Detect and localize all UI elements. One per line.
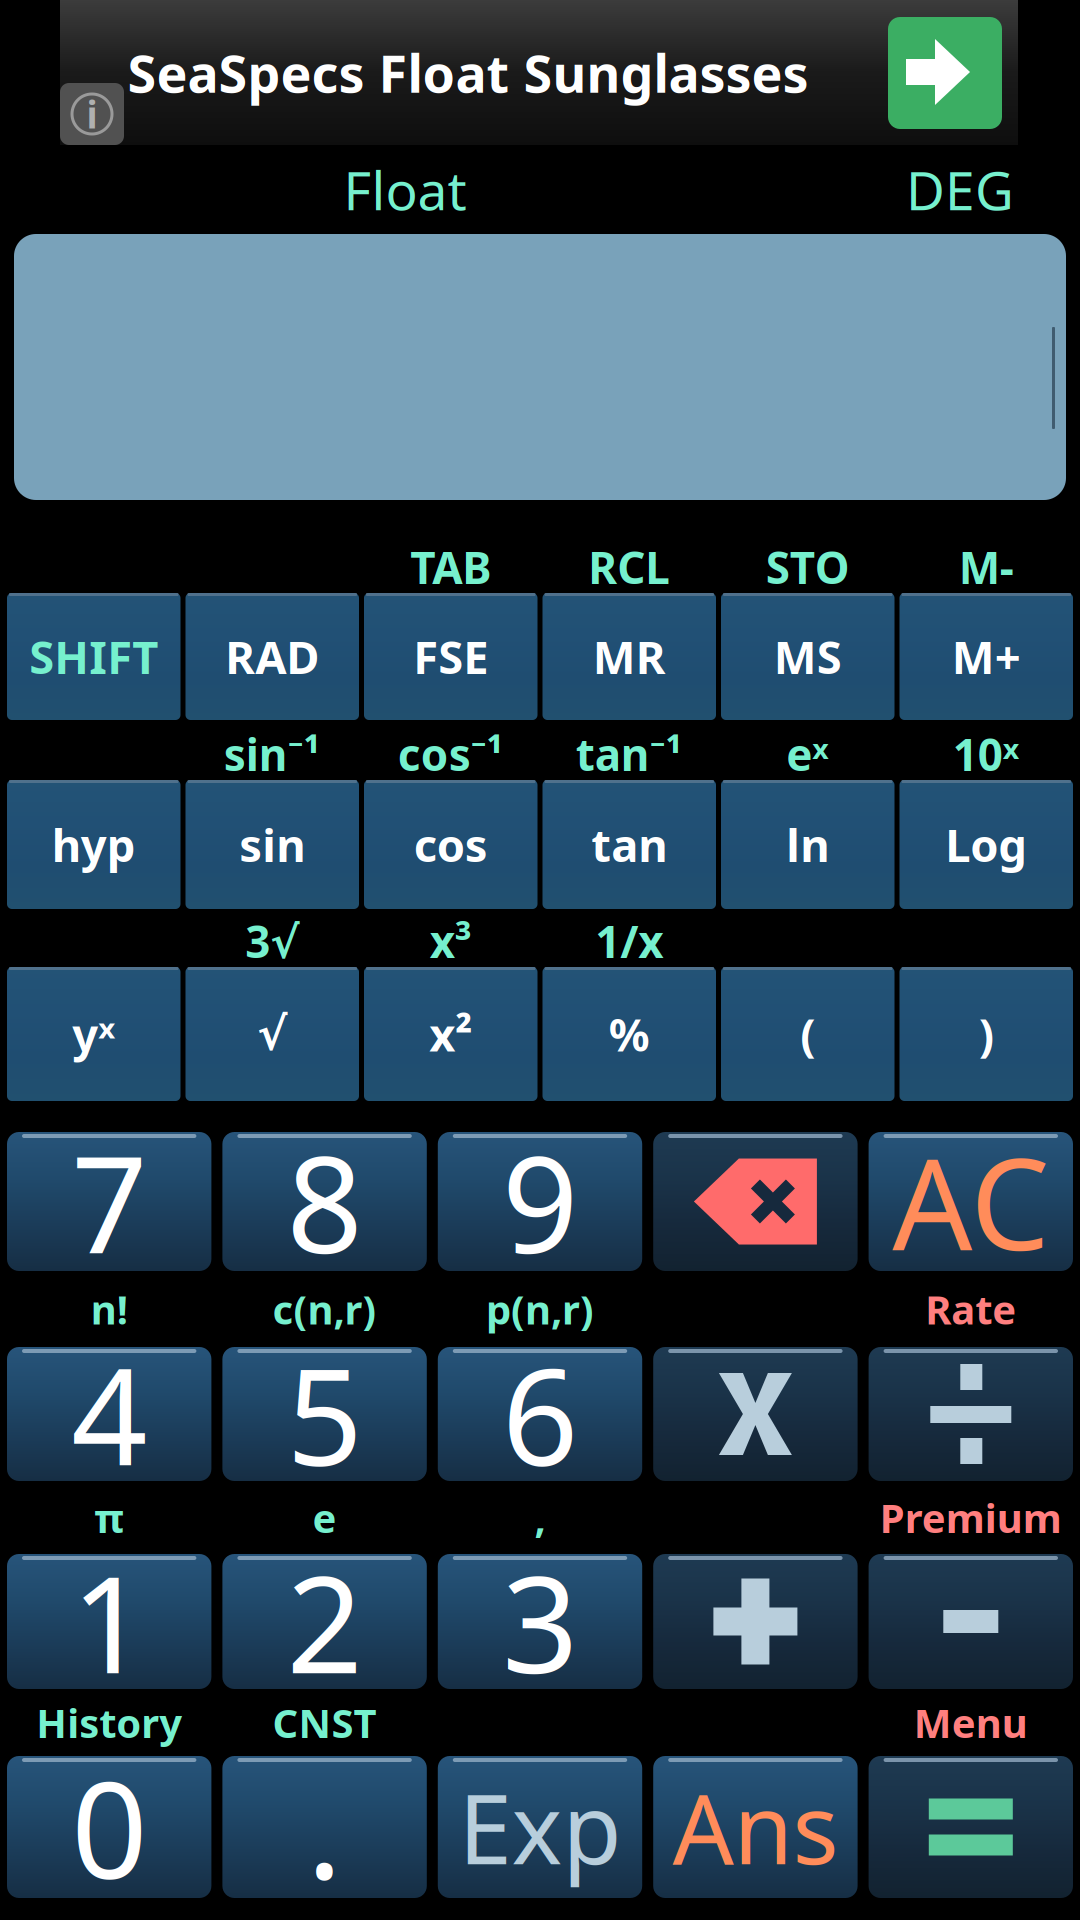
button[interactable]: % xyxy=(542,967,716,1101)
staticText: ln xyxy=(786,814,829,875)
staticText: 6 xyxy=(502,1325,578,1503)
staticText: CNST xyxy=(273,1696,377,1749)
staticText: 5 xyxy=(287,1325,363,1503)
staticText: M+ xyxy=(952,626,1021,687)
button[interactable]: 7 xyxy=(7,1132,211,1271)
staticText: hyp xyxy=(52,814,136,875)
staticText: 9 xyxy=(502,1113,578,1290)
staticText: 4 xyxy=(71,1325,147,1503)
staticText: DEG xyxy=(906,154,1014,225)
staticText: e xyxy=(313,1491,337,1544)
button[interactable]: x² xyxy=(364,967,537,1101)
staticText: Ans xyxy=(672,1763,838,1891)
button[interactable]: tan xyxy=(542,780,716,909)
staticText: 8 xyxy=(287,1113,363,1290)
button[interactable]: cos xyxy=(364,780,537,909)
staticText: cos⁻¹ xyxy=(398,725,504,783)
staticText: 2 xyxy=(287,1533,363,1710)
button[interactable]: . xyxy=(222,1756,427,1898)
button[interactable]: SHIFT xyxy=(7,593,180,720)
staticText: i xyxy=(86,89,97,139)
button[interactable]: 2 xyxy=(222,1554,427,1689)
staticText: MR xyxy=(593,626,666,687)
staticText: 10ˣ xyxy=(953,725,1020,783)
staticText: SeaSpecs Float Sunglasses xyxy=(127,38,808,107)
button[interactable]: 5 xyxy=(222,1347,427,1481)
staticText: History xyxy=(36,1696,182,1749)
button[interactable]: AC xyxy=(869,1132,1073,1271)
staticText: SHIFT xyxy=(29,626,158,687)
button[interactable]: 4 xyxy=(7,1347,211,1481)
staticText: ) xyxy=(979,1004,994,1064)
staticText: TAB xyxy=(410,538,491,596)
staticText: RAD xyxy=(225,626,319,687)
staticText: , xyxy=(534,1491,545,1544)
staticText: 3 xyxy=(502,1533,578,1710)
staticText: Menu xyxy=(914,1696,1028,1749)
button[interactable]: FSE xyxy=(364,593,537,720)
button[interactable]: 0 xyxy=(7,1756,211,1898)
staticText: n! xyxy=(91,1282,128,1335)
staticText: . xyxy=(307,1738,343,1916)
staticText: √ xyxy=(257,1008,287,1060)
button[interactable]: MS xyxy=(721,593,894,720)
button[interactable]: √ xyxy=(185,967,359,1101)
staticText: 7 xyxy=(71,1113,147,1290)
button[interactable]: 6 xyxy=(438,1347,642,1481)
staticText: 1/x xyxy=(595,912,663,970)
staticText: Premium xyxy=(880,1491,1062,1544)
staticText: AC xyxy=(892,1118,1049,1285)
button[interactable]: 9 xyxy=(438,1132,642,1271)
button[interactable]: hyp xyxy=(7,780,180,909)
staticText: 3√ xyxy=(245,912,299,970)
button[interactable]: Log xyxy=(899,780,1073,909)
button[interactable]: sin xyxy=(185,780,359,909)
button[interactable]: Divide xyxy=(869,1347,1073,1481)
staticText: Log xyxy=(945,814,1027,875)
staticText: p(n,r) xyxy=(486,1282,594,1335)
staticText: FSE xyxy=(413,626,488,687)
staticText: x³ xyxy=(430,912,472,970)
staticText: π xyxy=(94,1491,124,1544)
button[interactable]: 1 xyxy=(7,1554,211,1689)
button[interactable]: i xyxy=(0,0,1080,145)
button[interactable]: Plus xyxy=(653,1554,858,1689)
staticText: x² xyxy=(429,1004,472,1064)
button[interactable]: Equals xyxy=(869,1756,1073,1898)
button[interactable]: MR xyxy=(542,593,716,720)
staticText: MS xyxy=(774,626,842,687)
staticText: tan⁻¹ xyxy=(576,725,683,783)
staticText: RCL xyxy=(588,538,670,596)
staticText: Float xyxy=(343,154,466,225)
button[interactable]: Minus xyxy=(869,1554,1073,1689)
staticText: 0 xyxy=(71,1738,147,1916)
button[interactable]: Multiply xyxy=(653,1347,858,1481)
staticText: Exp xyxy=(458,1763,621,1891)
staticText: c(n,r) xyxy=(273,1282,377,1335)
staticText: M- xyxy=(959,538,1014,596)
button[interactable]: RAD xyxy=(185,593,359,720)
button[interactable]: Delete xyxy=(653,1132,858,1271)
button[interactable]: M+ xyxy=(899,593,1073,720)
staticText: % xyxy=(609,1004,650,1064)
staticText: sin⁻¹ xyxy=(224,725,321,783)
staticText: cos xyxy=(414,814,488,875)
staticText: Rate xyxy=(925,1282,1016,1335)
button[interactable]: 8 xyxy=(222,1132,427,1271)
button[interactable]: 3 xyxy=(438,1554,642,1689)
staticText: 1 xyxy=(71,1533,147,1710)
staticText: yˣ xyxy=(72,1004,115,1064)
staticText: STO xyxy=(766,538,850,596)
button[interactable]: yˣ xyxy=(7,967,180,1101)
button[interactable]: Ans xyxy=(653,1756,858,1898)
button[interactable]: ( xyxy=(721,967,894,1101)
button[interactable]: Exp xyxy=(438,1756,642,1898)
staticText: ( xyxy=(800,1004,815,1064)
button[interactable]: ln xyxy=(721,780,894,909)
staticText: tan xyxy=(591,814,667,875)
button[interactable]: ) xyxy=(899,967,1073,1101)
staticText: sin xyxy=(239,814,305,875)
staticText: eˣ xyxy=(786,725,829,783)
